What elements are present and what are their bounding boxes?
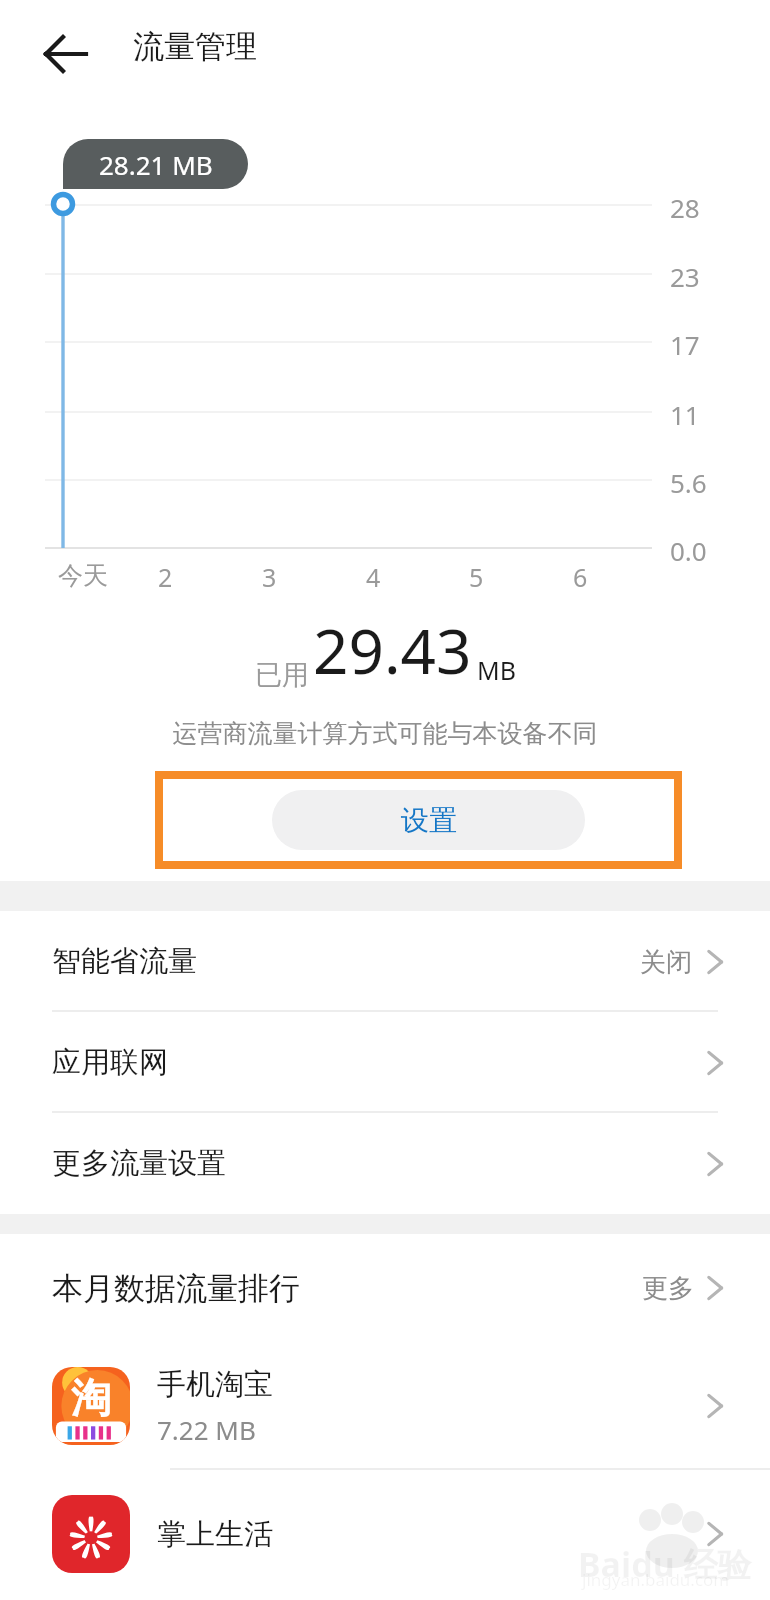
staticText: 手机淘宝	[157, 1366, 273, 1403]
staticText: 28	[670, 190, 700, 225]
staticText: 应用联网	[52, 1044, 168, 1081]
staticText: 淘	[71, 1373, 111, 1423]
staticText: 本月数据流量排行	[52, 1269, 300, 1308]
staticText: 5	[469, 560, 484, 594]
staticText: 运营商流量计算方式可能与本设备不同	[0, 718, 770, 749]
staticText: 已用	[255, 658, 309, 692]
staticText: 7.22 MB	[157, 1412, 256, 1447]
button[interactable]: 智能省流量	[0, 911, 770, 1012]
button[interactable]: Back	[38, 26, 94, 82]
staticText: 0.0	[670, 533, 707, 568]
staticText: 关闭	[640, 946, 692, 979]
staticText: 更多流量设置	[52, 1145, 226, 1182]
staticText: 11	[670, 397, 700, 432]
staticText: 28.21 MB	[99, 147, 213, 182]
staticText: 4	[366, 560, 381, 594]
staticText: 5.6	[670, 465, 707, 500]
staticText: 23	[670, 259, 700, 294]
staticText: 2	[158, 560, 173, 594]
staticText: 流量管理	[133, 27, 257, 66]
staticText: 3	[262, 560, 277, 594]
staticText: 29.43	[313, 608, 472, 692]
button[interactable]: 设置	[272, 790, 585, 850]
button[interactable]: 淘	[0, 1342, 770, 1470]
staticText: 更多	[642, 1272, 694, 1305]
button[interactable]: 掌上生活	[0, 1470, 770, 1598]
button[interactable]: 应用联网	[0, 1012, 770, 1113]
staticText: 掌上生活	[157, 1516, 273, 1553]
staticText: 智能省流量	[52, 943, 197, 980]
staticText: 设置	[401, 803, 457, 838]
staticText: jingyan.baidu.com	[582, 1568, 730, 1591]
staticText: 今天	[58, 560, 108, 591]
button[interactable]: 更多流量设置	[0, 1113, 770, 1214]
staticText: MB	[477, 653, 516, 687]
button[interactable]: 本月数据流量排行	[0, 1234, 770, 1342]
staticText: 17	[670, 327, 700, 362]
staticText: Baidu 经验	[578, 1541, 752, 1587]
staticText: 6	[573, 560, 588, 594]
